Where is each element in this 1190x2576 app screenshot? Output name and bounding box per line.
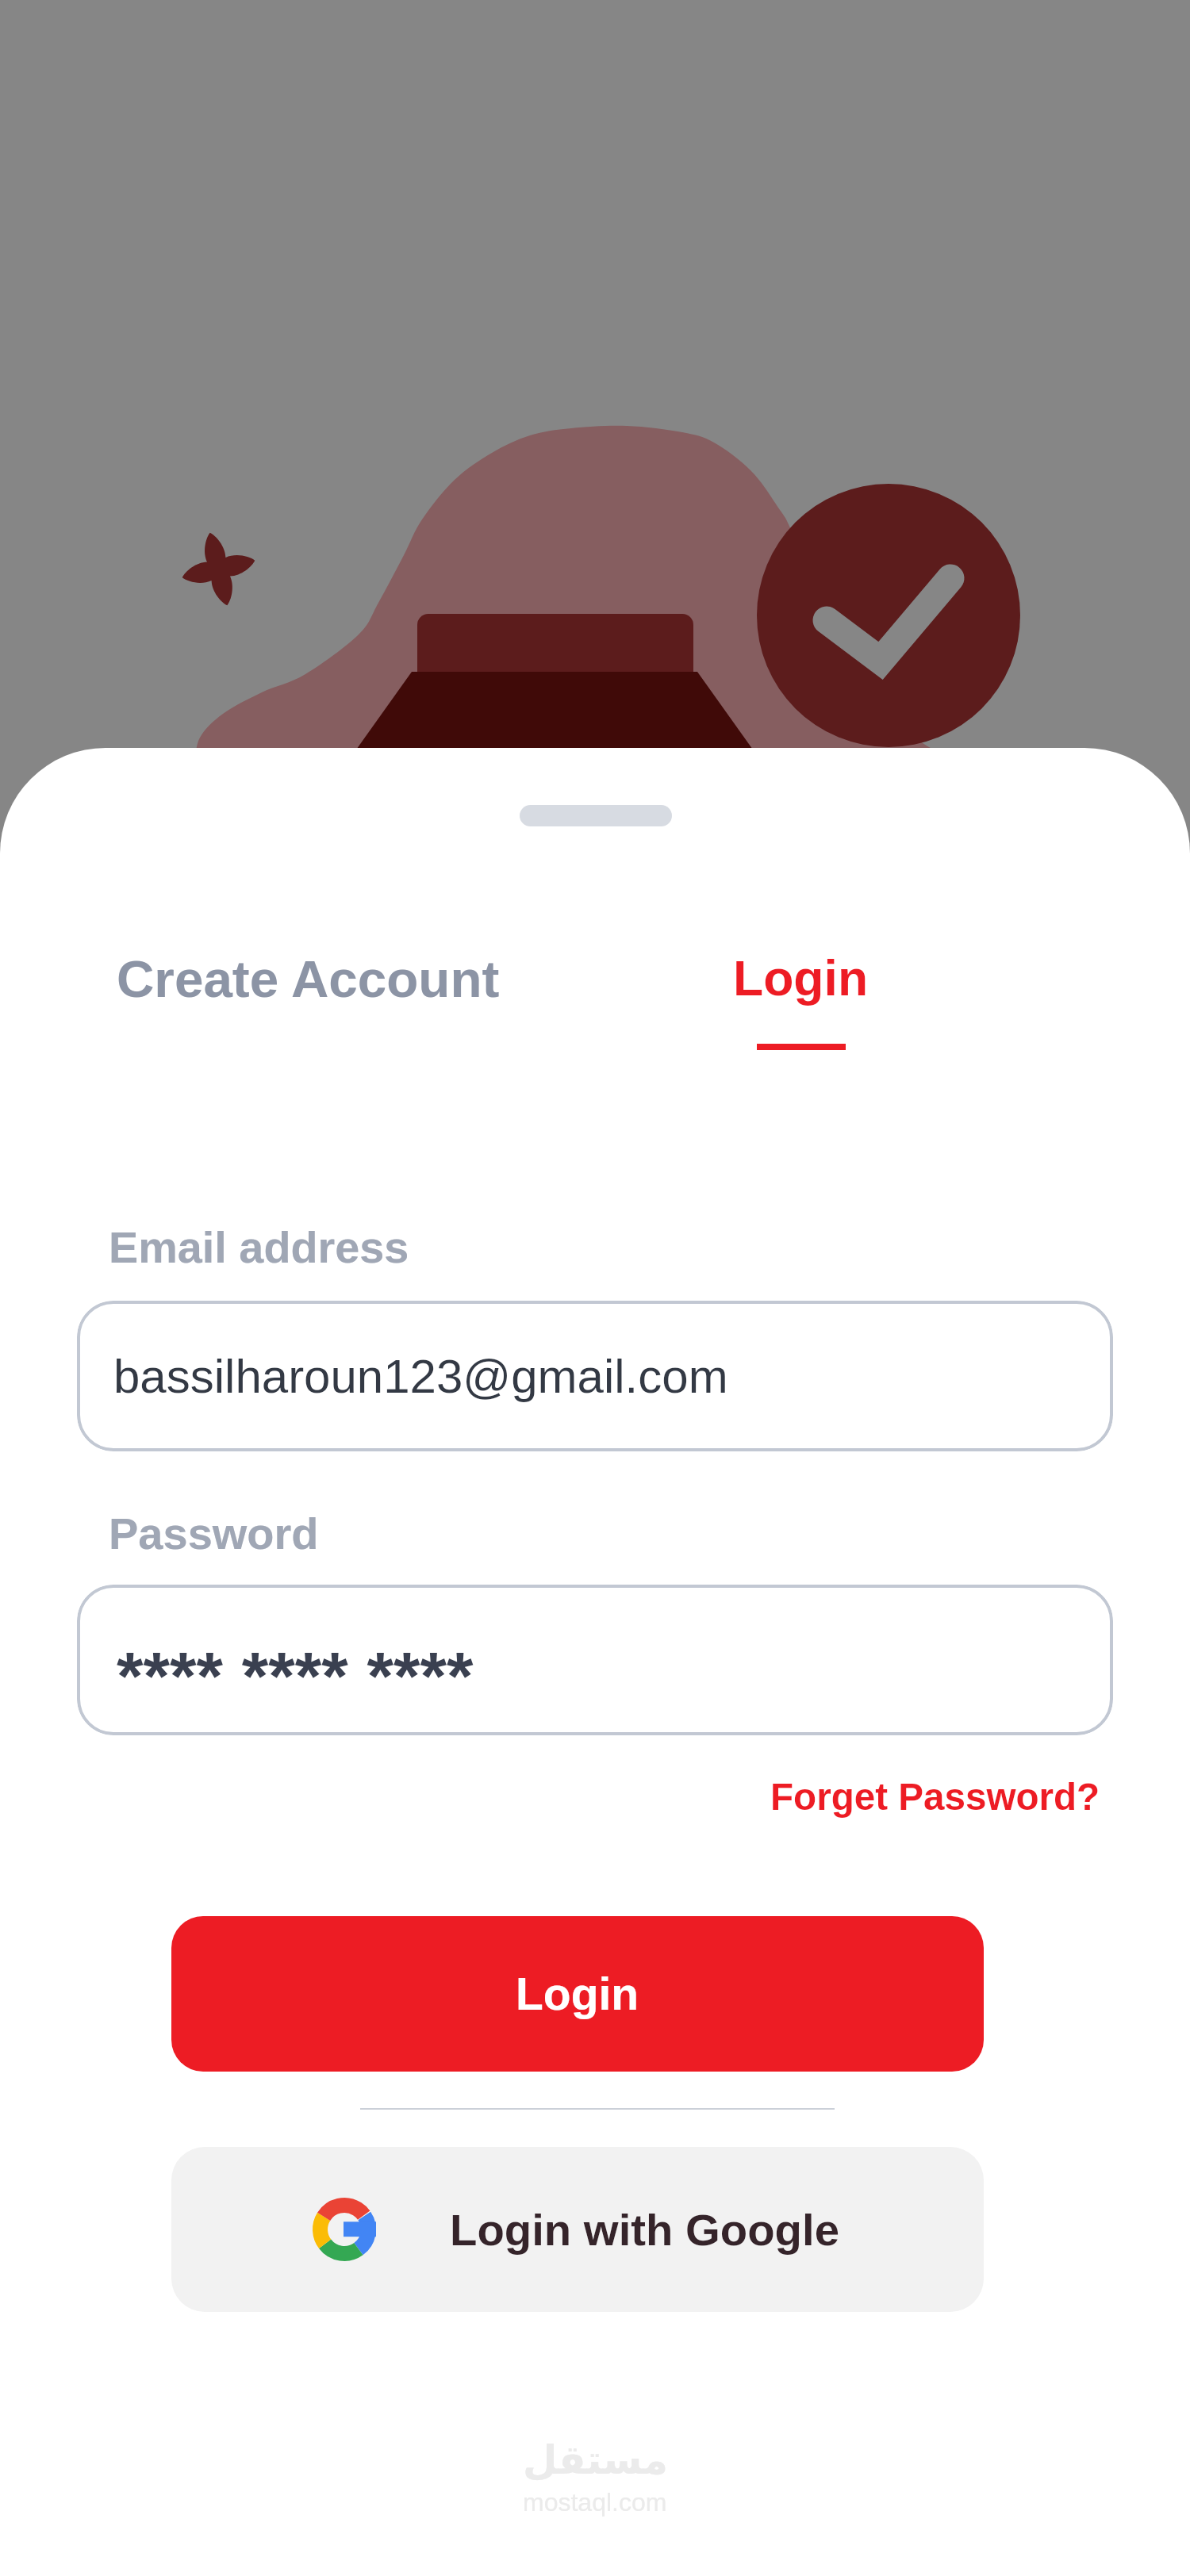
button[interactable]: **** **** ****	[77, 1585, 1113, 1735]
staticText: Email address	[109, 1222, 409, 1271]
staticText: Login with Google	[450, 2205, 839, 2255]
button[interactable]: Create Account	[94, 936, 522, 1022]
button[interactable]: bassilharoun123@gmail.com	[77, 1301, 1113, 1451]
staticText: **** **** ****	[117, 1638, 474, 1714]
staticText: bassilharoun123@gmail.com	[113, 1350, 728, 1403]
button[interactable]: Login	[711, 936, 891, 1064]
staticText: Login	[733, 950, 869, 1006]
button[interactable]: Login	[171, 1916, 984, 2072]
staticText: Create Account	[117, 950, 500, 1008]
button[interactable]: Login with Google	[171, 2147, 984, 2312]
staticText: Forget Password?	[770, 1776, 1100, 1818]
button[interactable]: Forget Password?	[753, 1765, 1118, 1829]
staticText: مستقل	[523, 2437, 668, 2483]
staticText: Login	[516, 1968, 639, 2019]
staticText: mostaql.com	[523, 2488, 667, 2517]
staticText: Password	[109, 1508, 319, 1558]
